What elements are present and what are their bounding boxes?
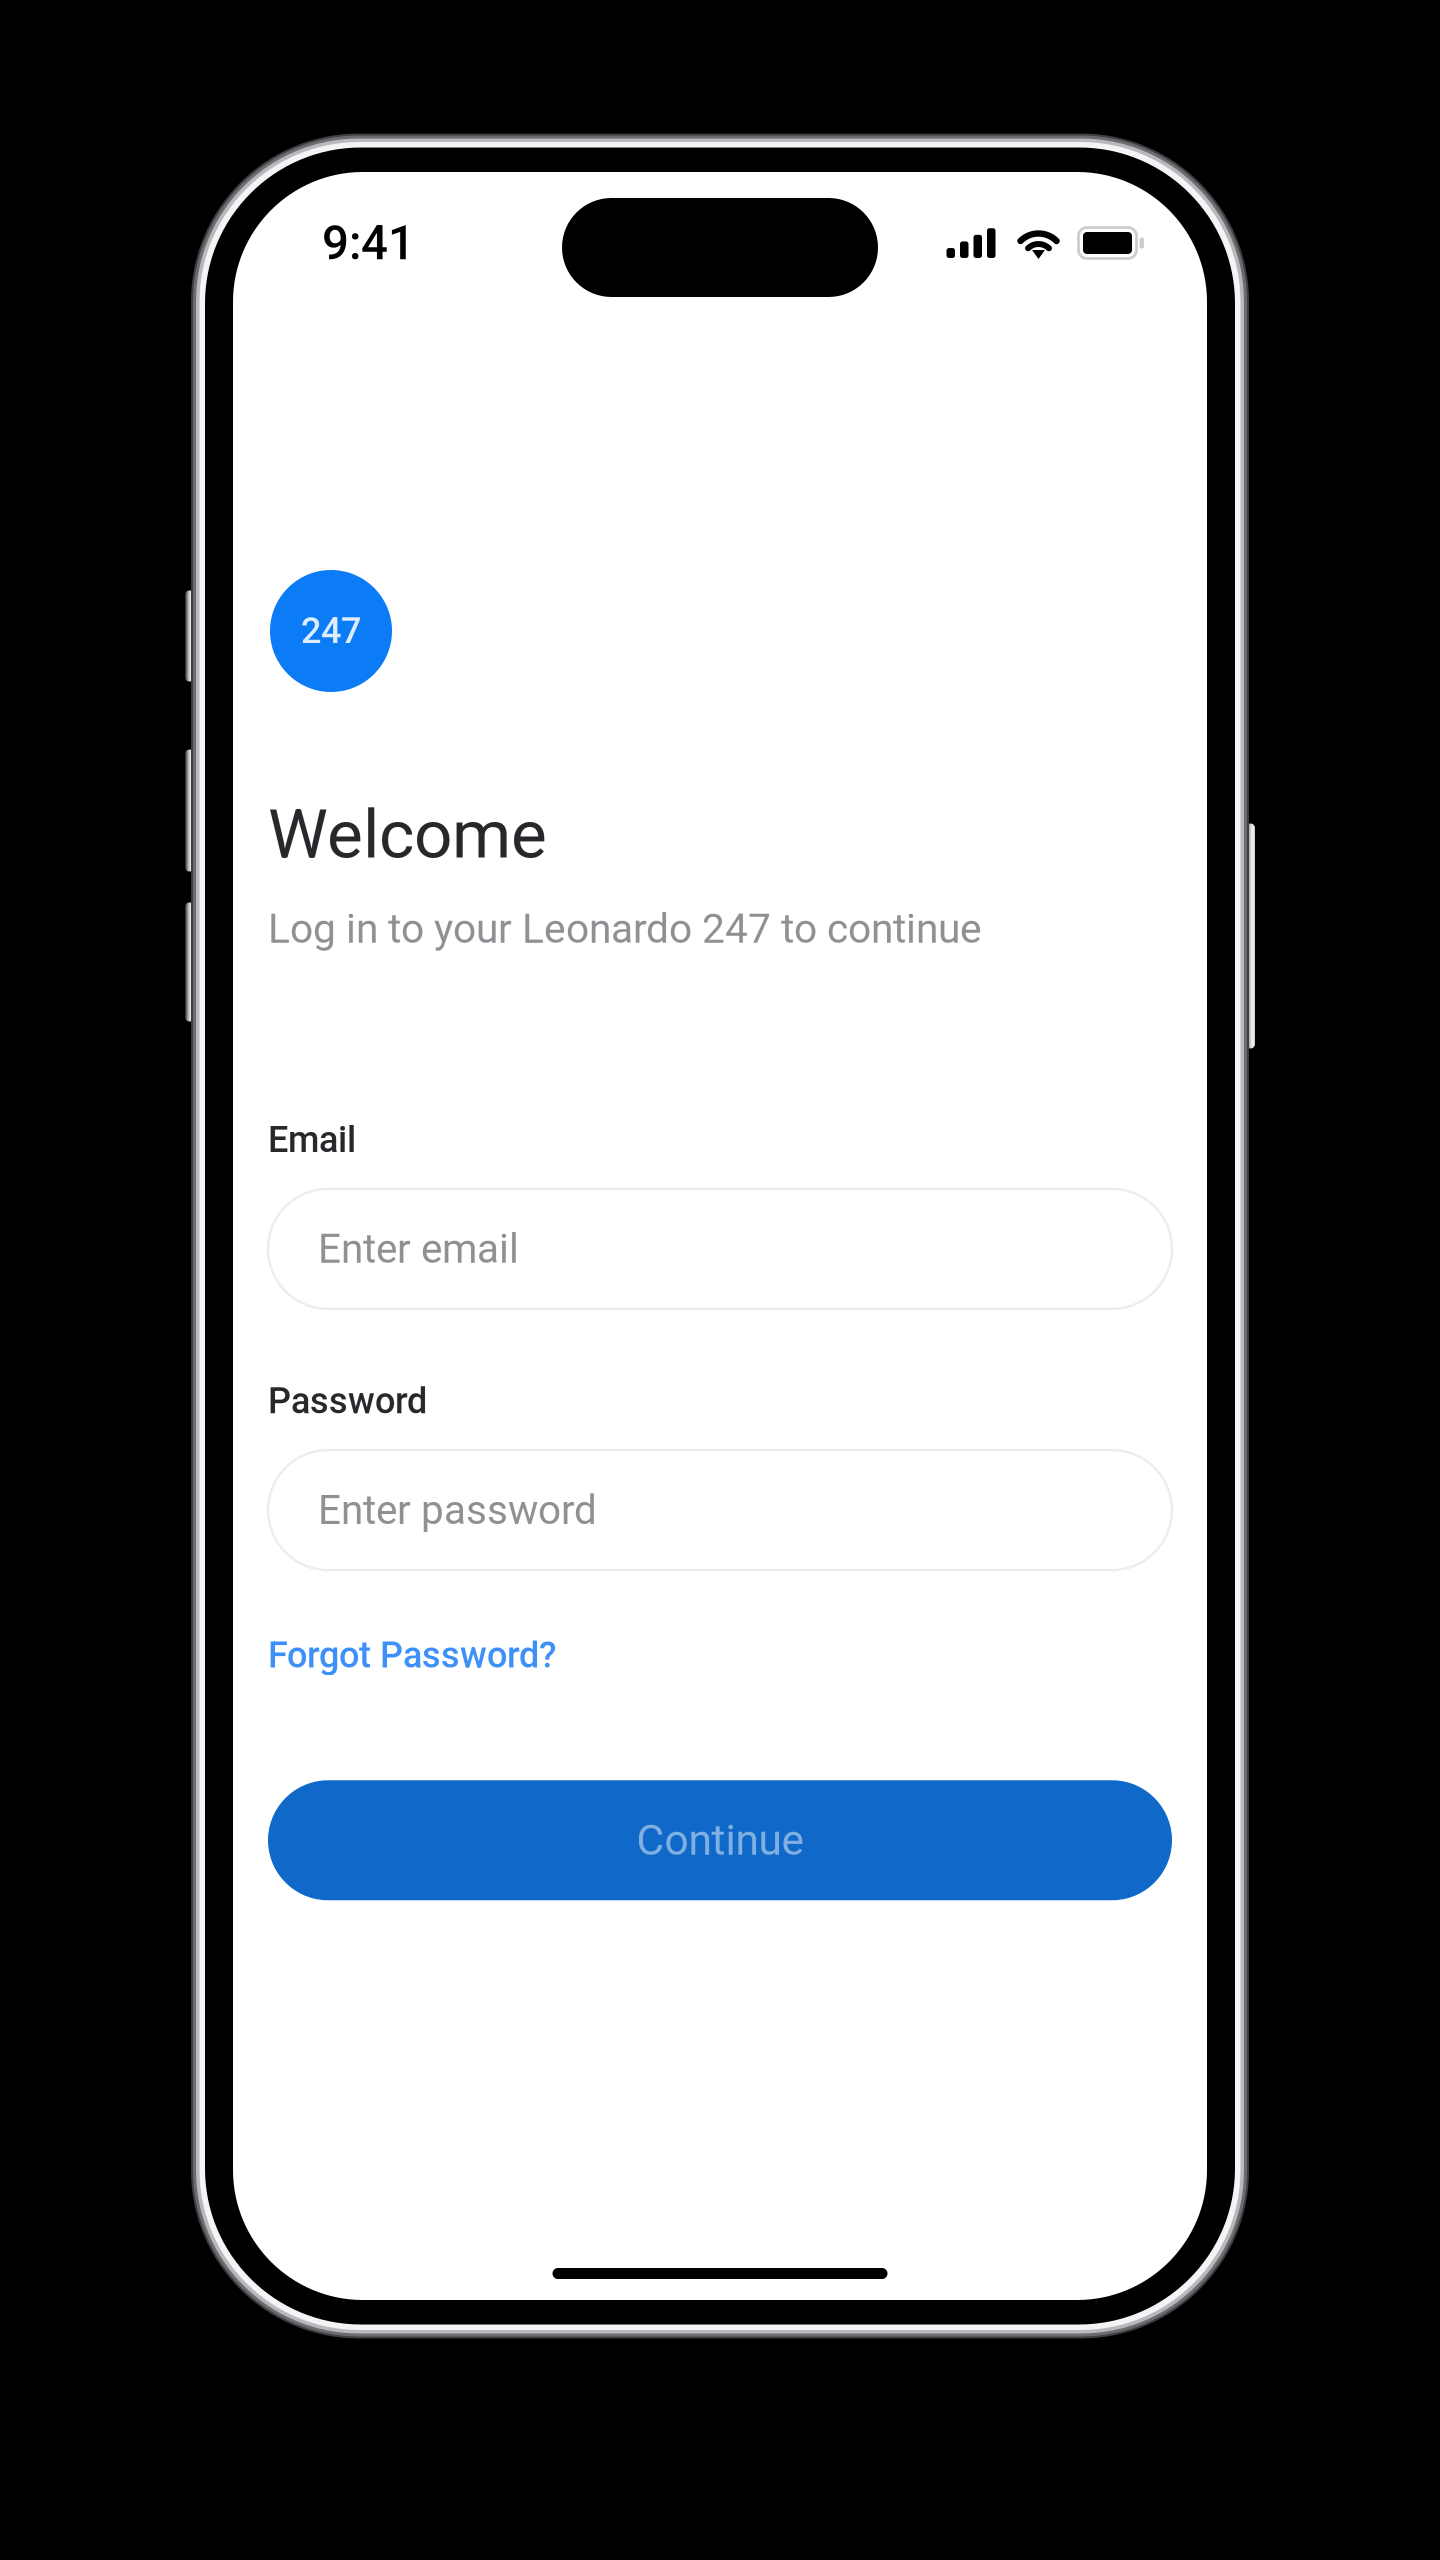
button[interactable]: Password bbox=[268, 1450, 1172, 1570]
staticText: 9:41 bbox=[322, 215, 415, 271]
staticText: Enter email bbox=[318, 1225, 519, 1272]
staticText: 247 bbox=[301, 610, 361, 652]
button[interactable]: Continue bbox=[268, 1780, 1172, 1900]
button[interactable]: Email bbox=[268, 1189, 1172, 1309]
staticText: Log in to your Leonardo 247 to continue bbox=[268, 905, 982, 953]
staticText: Forgot Password? bbox=[268, 1634, 557, 1676]
staticText: Enter password bbox=[318, 1486, 597, 1534]
staticText: Password bbox=[268, 1380, 427, 1422]
staticText: Email bbox=[268, 1119, 356, 1161]
button[interactable]: Forgot Password? bbox=[268, 1634, 557, 1676]
staticText: Welcome bbox=[268, 795, 547, 874]
staticText: Continue bbox=[636, 1815, 803, 1865]
